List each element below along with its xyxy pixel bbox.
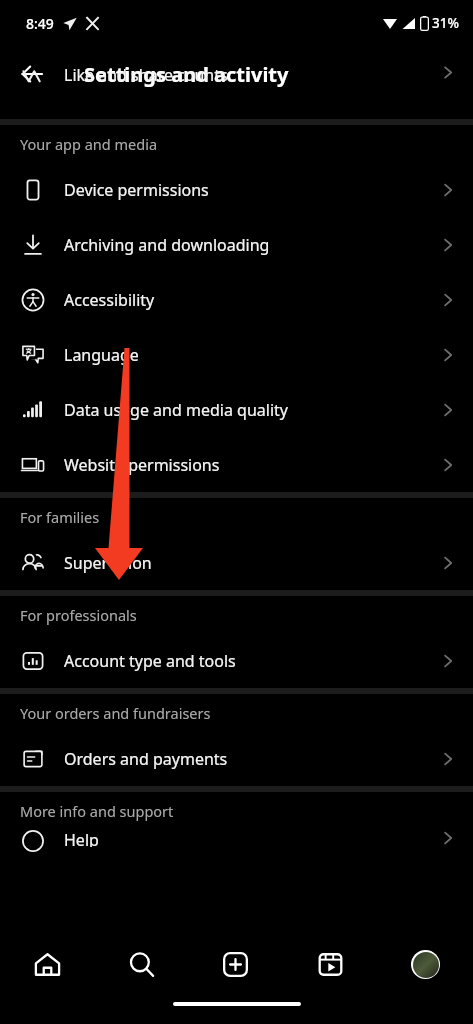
- staticText: Help: [64, 829, 439, 847]
- button[interactable]: Orders and payments: [0, 731, 473, 786]
- staticText: 31%: [432, 14, 459, 32]
- button[interactable]: Archiving and downloading: [0, 217, 473, 272]
- button[interactable]: Search: [94, 932, 188, 996]
- staticText: Supervision: [64, 552, 439, 574]
- staticText: For families: [20, 507, 100, 527]
- button[interactable]: Supervision: [0, 535, 473, 590]
- staticText: Archiving and downloading: [64, 234, 439, 256]
- staticText: Your orders and fundraisers: [20, 703, 211, 723]
- staticText: More info and support: [20, 801, 174, 821]
- button[interactable]: Language: [0, 327, 473, 382]
- staticText: Accessibility: [64, 289, 439, 311]
- staticText: Like and share counts: [64, 64, 439, 81]
- staticText: Website permissions: [64, 454, 439, 476]
- button[interactable]: Reels: [283, 932, 378, 996]
- button[interactable]: Profile: [378, 932, 473, 996]
- staticText: For professionals: [20, 605, 137, 625]
- staticText: Settings and activity: [84, 61, 289, 88]
- button[interactable]: Device permissions: [0, 162, 473, 217]
- staticText: Data usage and media quality: [64, 399, 439, 421]
- button[interactable]: Create: [188, 932, 283, 996]
- staticText: Language: [64, 344, 439, 366]
- button[interactable]: Accessibility: [0, 272, 473, 327]
- button[interactable]: Account type and tools: [0, 633, 473, 688]
- staticText: Device permissions: [64, 179, 439, 201]
- button[interactable]: Website permissions: [0, 437, 473, 492]
- staticText: 8:49: [26, 14, 54, 33]
- button[interactable]: Back: [10, 52, 54, 96]
- button[interactable]: Data usage and media quality: [0, 382, 473, 437]
- staticText: Your app and media: [20, 134, 158, 154]
- button[interactable]: Help: [0, 829, 473, 847]
- staticText: Orders and payments: [64, 748, 439, 770]
- button[interactable]: Home: [0, 932, 94, 996]
- button[interactable]: Like and share counts: [0, 64, 473, 81]
- staticText: Account type and tools: [64, 650, 439, 672]
